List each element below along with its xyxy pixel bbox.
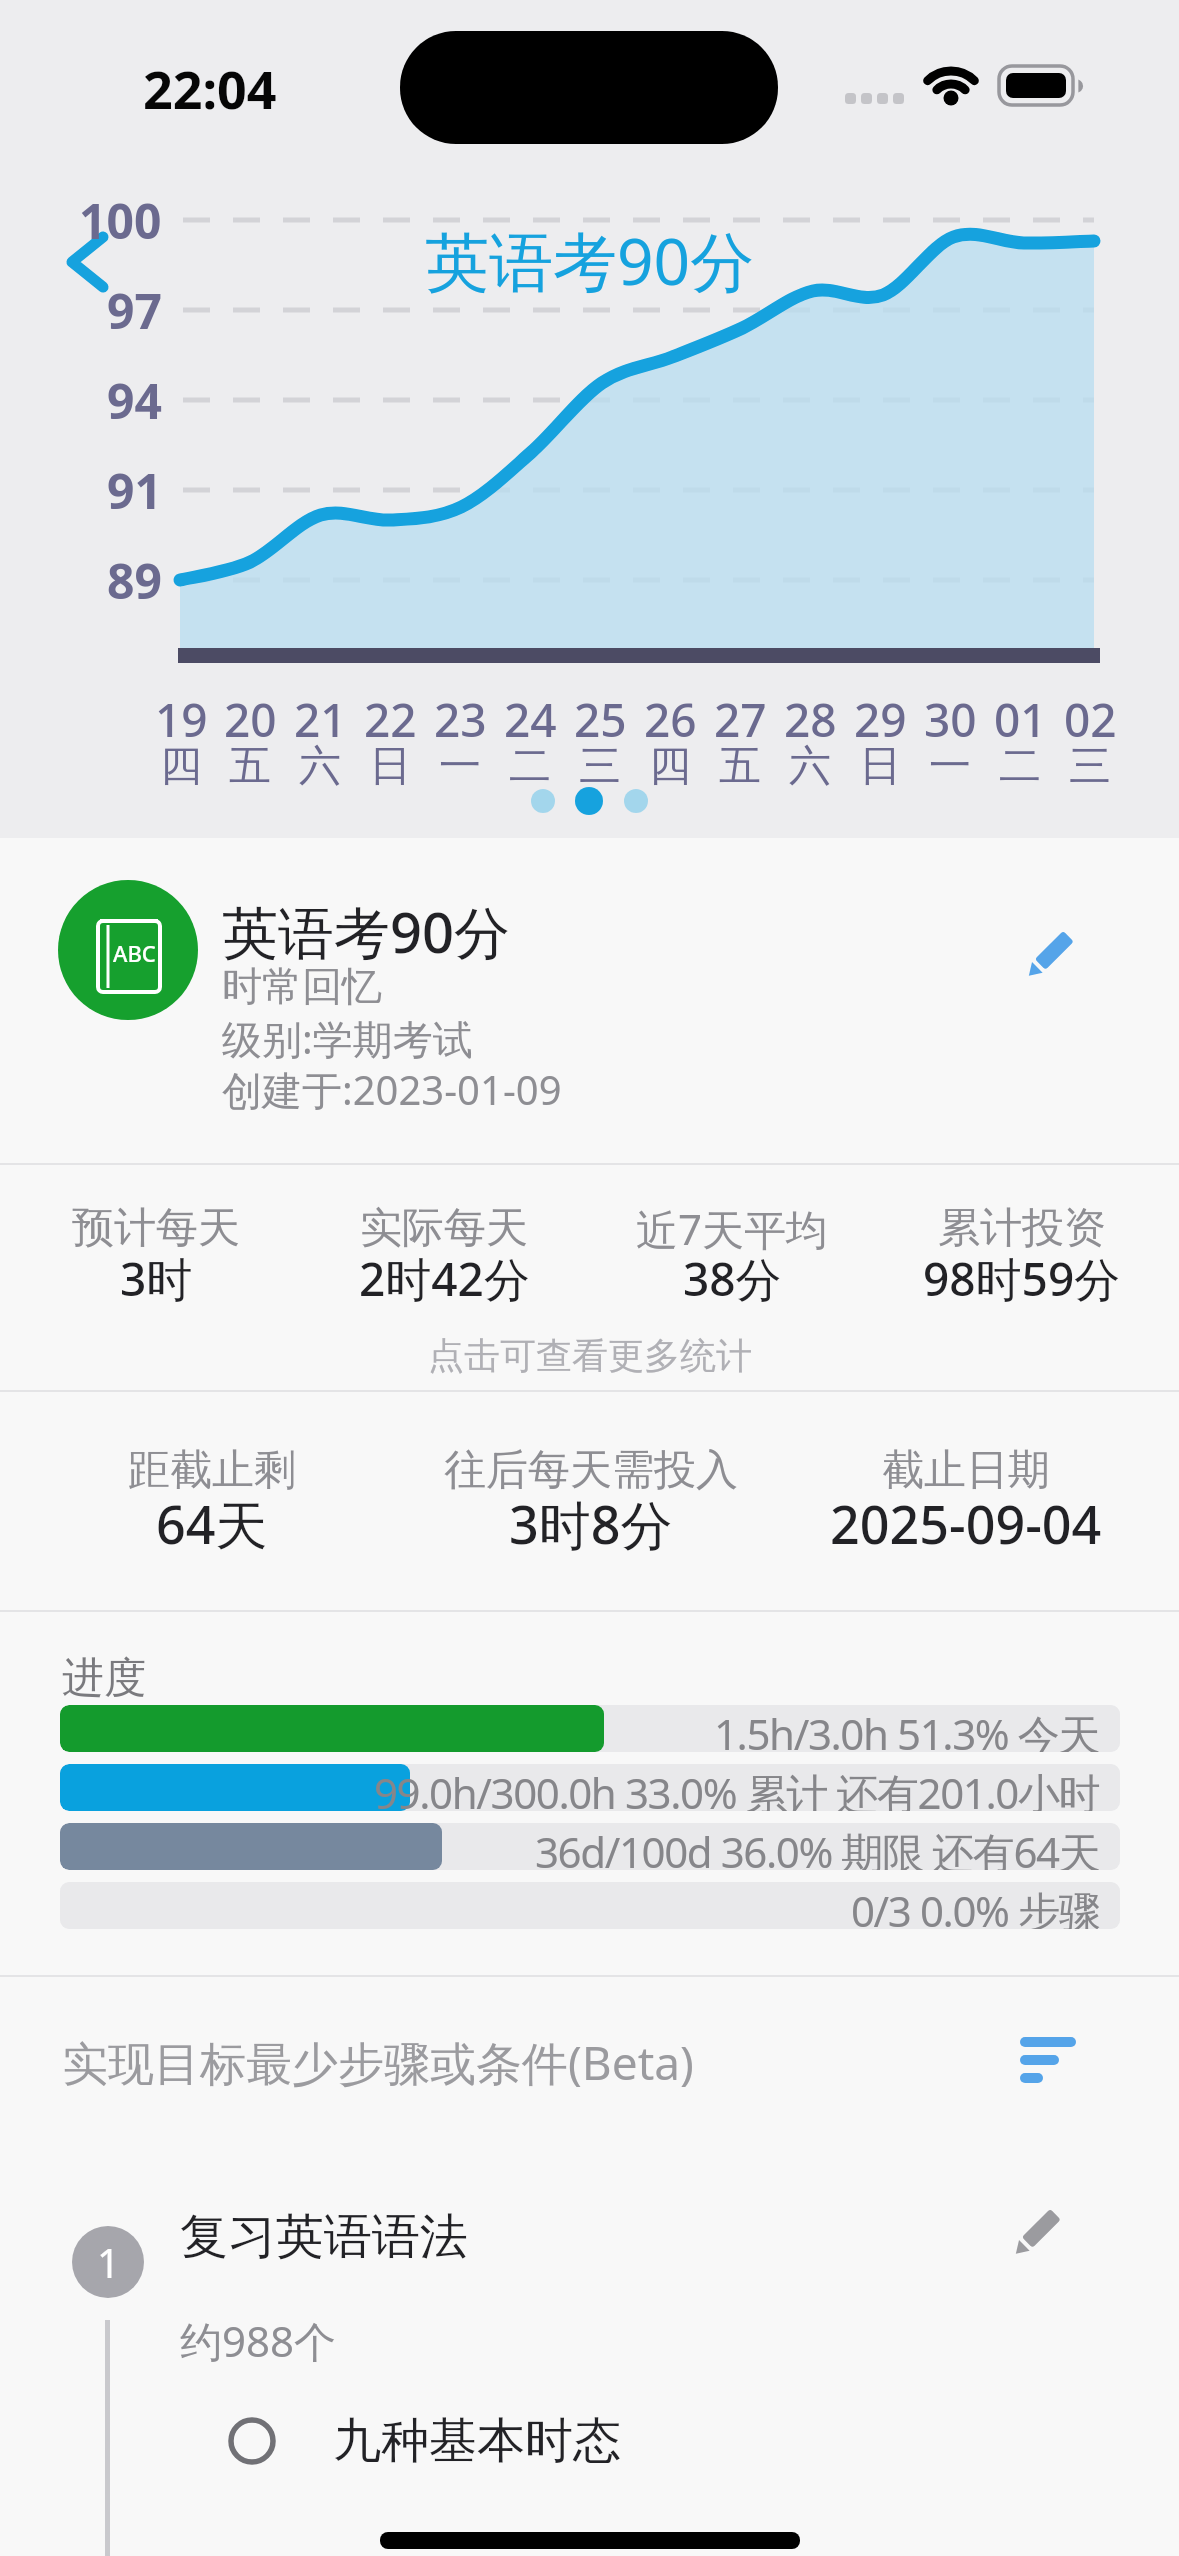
- staticText: 19: [155, 688, 208, 751]
- staticText: 02: [1064, 688, 1117, 751]
- staticText: 36d/100d 36.0% 期限 还有64天: [535, 1823, 1100, 1870]
- staticText: 99.0h/300.0h 33.0% 累计 还有201.0小时: [374, 1764, 1100, 1811]
- staticText: 0/3 0.0% 步骤: [851, 1882, 1100, 1929]
- staticText: 距截止剩: [128, 1444, 296, 1497]
- staticText: 四: [160, 740, 202, 793]
- staticText: 累计投资: [938, 1202, 1106, 1255]
- button[interactable]: 2025-09-04: [786, 1471, 1146, 1575]
- button[interactable]: 复习英语语法: [180, 2189, 468, 2285]
- staticText: 3时: [120, 1247, 193, 1310]
- staticText: 91: [107, 458, 162, 523]
- staticText: 1: [97, 2235, 120, 2289]
- staticText: 27: [714, 688, 767, 751]
- button[interactable]: 3时8分: [411, 1471, 771, 1575]
- button[interactable]: [1016, 922, 1082, 988]
- staticText: ABC: [113, 938, 156, 968]
- staticText: 98时59分: [923, 1247, 1121, 1310]
- staticText: 近7天平均: [636, 1200, 829, 1257]
- staticText: 23: [434, 688, 487, 751]
- staticText: 预计每天: [72, 1202, 240, 1255]
- staticText: 2时42分: [359, 1247, 530, 1310]
- staticText: 3时8分: [509, 1488, 673, 1559]
- button[interactable]: 2时42分: [264, 1232, 624, 1324]
- staticText: 20: [224, 688, 277, 751]
- staticText: 截止日期: [882, 1444, 1050, 1497]
- staticText: 22:04: [143, 53, 277, 124]
- button[interactable]: [1003, 2200, 1069, 2266]
- button[interactable]: 64天: [32, 1471, 392, 1575]
- staticText: 26: [644, 688, 697, 751]
- button[interactable]: [1008, 2024, 1088, 2104]
- staticText: 二: [509, 740, 551, 793]
- staticText: 二: [999, 740, 1041, 793]
- staticText: 28: [784, 688, 837, 751]
- staticText: 24: [504, 688, 557, 751]
- staticText: 97: [107, 278, 162, 343]
- staticText: 22: [364, 688, 417, 751]
- staticText: 复习英语语法: [180, 2207, 468, 2267]
- staticText: 五: [719, 740, 761, 793]
- staticText: 创建于:2023-01-09: [222, 1062, 562, 1117]
- staticText: 100: [79, 188, 162, 253]
- staticText: 英语考90分: [222, 893, 511, 969]
- staticText: 六: [299, 740, 341, 793]
- staticText: 九种基本时态: [333, 2411, 621, 2471]
- staticText: 三: [579, 740, 621, 793]
- staticText: 时常回忆: [222, 961, 382, 1011]
- button[interactable]: 点击可查看更多统计: [0, 1319, 1179, 1391]
- staticText: 一: [929, 740, 971, 793]
- staticText: 64天: [156, 1488, 268, 1559]
- button[interactable]: 99.0h/300.0h 33.0% 累计 还有201.0小时: [60, 1764, 1120, 1811]
- button[interactable]: 38分: [552, 1232, 912, 1324]
- staticText: 94: [107, 368, 162, 433]
- button[interactable]: 36d/100d 36.0% 期限 还有64天: [60, 1823, 1120, 1870]
- staticText: 一: [439, 740, 481, 793]
- staticText: 日: [369, 740, 411, 793]
- staticText: 29: [854, 688, 907, 751]
- staticText: 点击可查看更多统计: [428, 1333, 752, 1378]
- staticText: 进度: [62, 1652, 146, 1705]
- button[interactable]: ABC: [58, 880, 198, 1020]
- staticText: 级别:学期考试: [222, 1011, 473, 1066]
- staticText: 01: [994, 688, 1047, 751]
- staticText: 实现目标最少步骤或条件(Beta): [62, 2031, 694, 2094]
- button[interactable]: 3时: [0, 1232, 336, 1324]
- staticText: 五: [229, 740, 271, 793]
- button[interactable]: 98时59分: [842, 1232, 1179, 1324]
- staticText: 日: [859, 740, 901, 793]
- staticText: 38分: [683, 1247, 782, 1310]
- button[interactable]: 1.5h/3.0h 51.3% 今天: [60, 1705, 1120, 1752]
- staticText: 2025-09-04: [830, 1488, 1102, 1559]
- staticText: 约988个: [180, 2312, 337, 2369]
- staticText: 89: [107, 548, 162, 613]
- staticText: 三: [1069, 740, 1111, 793]
- staticText: 21: [294, 688, 347, 751]
- staticText: 30: [924, 688, 977, 751]
- staticText: 六: [789, 740, 831, 793]
- staticText: 往后每天需投入: [444, 1444, 738, 1497]
- staticText: 英语考90分: [425, 217, 755, 304]
- staticText: 25: [574, 688, 627, 751]
- staticText: 1.5h/3.0h 51.3% 今天: [714, 1705, 1100, 1752]
- button[interactable]: 0/3 0.0% 步骤: [60, 1882, 1120, 1929]
- staticText: 实际每天: [360, 1202, 528, 1255]
- staticText: 四: [649, 740, 691, 793]
- button[interactable]: [210, 2400, 1179, 2484]
